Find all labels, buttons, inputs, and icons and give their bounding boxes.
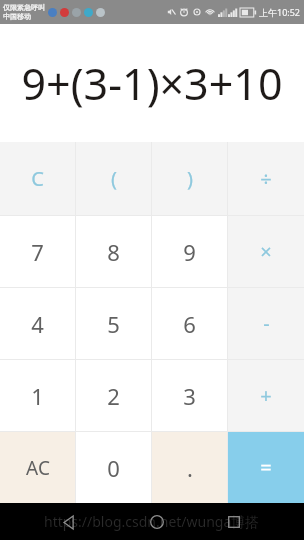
- button[interactable]: 4: [0, 288, 75, 359]
- staticText: 4: [31, 309, 44, 339]
- staticText: 0: [107, 453, 120, 483]
- button[interactable]: ÷: [228, 142, 304, 215]
- button[interactable]: (: [76, 142, 151, 215]
- button[interactable]: ): [152, 142, 227, 215]
- staticText: 7: [31, 237, 44, 267]
- button[interactable]: Back: [56, 509, 82, 535]
- button[interactable]: C: [0, 142, 75, 215]
- staticText: .: [187, 453, 193, 483]
- staticText: C: [31, 165, 44, 192]
- staticText: ): [187, 165, 193, 192]
- button[interactable]: .: [152, 432, 227, 503]
- button[interactable]: Home: [144, 509, 170, 535]
- staticText: +: [260, 382, 272, 409]
- staticText: (: [111, 165, 117, 192]
- button[interactable]: Recent apps: [221, 509, 247, 535]
- button[interactable]: 0: [76, 432, 151, 503]
- staticText: https://blog.csdn.net/wunga博搭: [44, 512, 260, 531]
- staticText: 中国移动: [3, 12, 31, 21]
- button[interactable]: ×: [228, 216, 304, 287]
- staticText: 3: [183, 381, 196, 411]
- staticText: 5: [107, 309, 120, 339]
- staticText: 1: [31, 381, 44, 411]
- button[interactable]: -: [228, 288, 304, 359]
- button[interactable]: 3: [152, 360, 227, 431]
- staticText: ÷: [260, 165, 272, 192]
- staticText: =: [260, 454, 272, 481]
- staticText: 上午10:52: [259, 6, 301, 18]
- staticText: AC: [26, 455, 50, 481]
- button[interactable]: AC: [0, 432, 75, 503]
- staticText: ×: [260, 238, 272, 265]
- button[interactable]: 2: [76, 360, 151, 431]
- button[interactable]: 8: [76, 216, 151, 287]
- staticText: 9+(3-1)×3+10: [21, 54, 283, 113]
- staticText: 9: [183, 237, 196, 267]
- button[interactable]: 9: [152, 216, 227, 287]
- button[interactable]: 5: [76, 288, 151, 359]
- button[interactable]: =: [228, 432, 304, 503]
- button[interactable]: +: [228, 360, 304, 431]
- button[interactable]: 7: [0, 216, 75, 287]
- button[interactable]: 1: [0, 360, 75, 431]
- staticText: 仅限紧急呼叫: [3, 3, 45, 12]
- staticText: 2: [107, 381, 120, 411]
- button[interactable]: 6: [152, 288, 227, 359]
- staticText: 8: [107, 237, 120, 267]
- staticText: 6: [183, 309, 196, 339]
- staticText: -: [263, 310, 270, 337]
